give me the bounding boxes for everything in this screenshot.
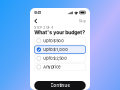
button[interactable]: Up to $500	[34, 37, 86, 45]
staticText: What's your budget?	[34, 29, 85, 35]
button[interactable]: Any price	[34, 63, 86, 71]
staticText: Continue	[50, 83, 69, 88]
button[interactable]: Up to $1,000	[34, 46, 86, 53]
button[interactable]: Up to $2,500	[34, 54, 86, 62]
staticText: Any price	[43, 64, 60, 69]
staticText: Skip	[79, 19, 86, 23]
staticText: Up to $2,500	[43, 56, 67, 61]
button[interactable]: Back	[34, 17, 41, 25]
button[interactable]: Skip	[79, 17, 86, 25]
staticText: Up to $500	[43, 38, 64, 43]
button[interactable]: Continue	[34, 81, 86, 90]
staticText: STEP 2 OF 4	[34, 26, 53, 29]
staticText: Up to $1,000	[43, 47, 68, 52]
staticText: 9:41	[34, 10, 41, 15]
